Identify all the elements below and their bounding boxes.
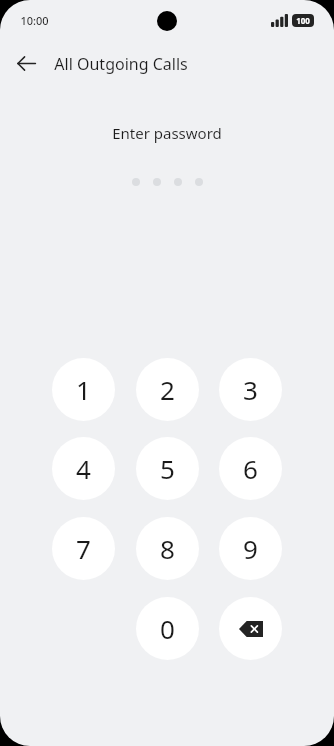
staticText: 1 [76, 372, 91, 407]
staticText: Enter password [112, 123, 222, 143]
staticText: 6 [243, 451, 258, 486]
button[interactable]: 9 [219, 517, 282, 580]
button[interactable]: 4 [52, 437, 115, 500]
staticText: 2 [160, 372, 175, 407]
staticText: 4 [76, 451, 91, 486]
button[interactable]: 2 [136, 358, 199, 421]
staticText: 10:00 [20, 13, 49, 28]
staticText: 0 [160, 611, 175, 646]
staticText: All Outgoing Calls [54, 53, 188, 75]
button[interactable]: 5 [136, 437, 199, 500]
staticText: 5 [160, 451, 175, 486]
staticText: 7 [76, 531, 91, 566]
staticText: 100 [296, 15, 310, 26]
button[interactable]: 6 [219, 437, 282, 500]
staticText: 9 [243, 531, 258, 566]
button[interactable]: 8 [136, 517, 199, 580]
button[interactable]: 1 [52, 358, 115, 421]
button[interactable]: Backspace [219, 597, 282, 660]
staticText: 3 [243, 372, 258, 407]
button[interactable]: 0 [136, 597, 199, 660]
button[interactable]: Back [9, 46, 43, 80]
staticText: 8 [160, 531, 175, 566]
button[interactable]: 7 [52, 517, 115, 580]
button[interactable]: 3 [219, 358, 282, 421]
